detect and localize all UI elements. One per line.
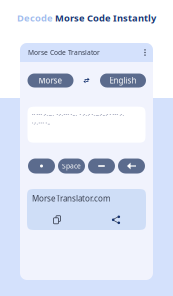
button[interactable]: Backspace — [118, 158, 145, 173]
staticText: Morse Code Translator — [28, 48, 100, 57]
button[interactable]: More options — [139, 43, 151, 62]
button[interactable]: Space — [58, 158, 85, 173]
staticText: MorseTranslator.com — [32, 193, 110, 204]
button[interactable]: Copy — [45, 212, 69, 228]
staticText: -- --- .-. ... . -.-. --- -.. . - .-. .-… — [31, 110, 123, 117]
staticText: Space — [62, 162, 81, 170]
staticText: Decode — [17, 12, 55, 24]
button[interactable]: Dash — [88, 158, 115, 173]
staticText: English — [109, 75, 136, 86]
button[interactable]: English — [100, 73, 146, 87]
button[interactable]: Swap languages — [78, 73, 94, 87]
button[interactable]: Dot — [28, 158, 55, 173]
staticText: -.-. --- -.. — [31, 119, 49, 126]
staticText: Morse Code Instantly — [55, 12, 156, 24]
button[interactable]: Morse — [27, 73, 73, 87]
staticText: Morse — [38, 75, 62, 86]
button[interactable]: Share — [104, 212, 128, 228]
